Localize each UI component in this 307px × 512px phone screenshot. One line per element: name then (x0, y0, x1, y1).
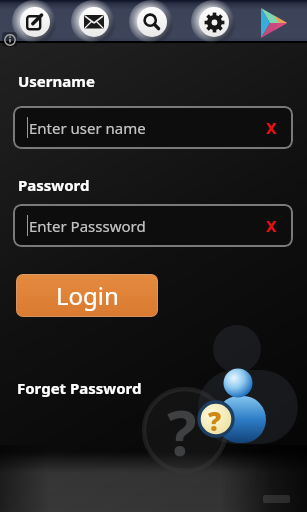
button[interactable] (199, 7, 229, 37)
staticText: Password (18, 175, 90, 195)
button[interactable] (79, 7, 109, 37)
staticText: X (266, 118, 277, 138)
button[interactable] (137, 7, 167, 37)
staticText: X (266, 216, 277, 236)
staticText: ? (167, 390, 197, 474)
staticText: Enter user name (29, 118, 146, 138)
button[interactable]: Enter Passsword (13, 204, 293, 247)
button[interactable] (259, 6, 289, 40)
button[interactable]: Login (16, 274, 158, 317)
button[interactable] (2, 32, 17, 47)
staticText: Login (56, 279, 119, 312)
staticText: Enter Passsword (29, 216, 146, 236)
staticText: Forget Password (17, 378, 142, 398)
button[interactable] (20, 7, 50, 37)
staticText: Username (18, 71, 95, 91)
button[interactable]: Enter user name (13, 106, 293, 149)
staticText: ? (208, 403, 222, 438)
button[interactable]: Forget Password (17, 378, 142, 398)
